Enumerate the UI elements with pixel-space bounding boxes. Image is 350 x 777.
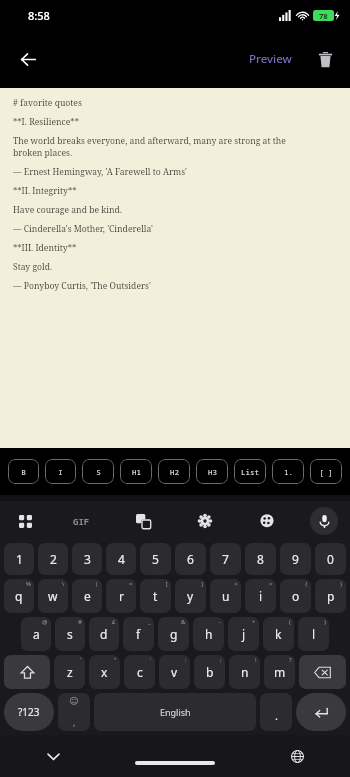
button[interactable]: Voice input bbox=[310, 507, 338, 535]
button[interactable]: I bbox=[45, 459, 76, 484]
button[interactable]: ' bbox=[54, 655, 85, 689]
button[interactable]: Backspace bbox=[299, 655, 346, 689]
staticText: ) bbox=[324, 618, 326, 626]
staticText: ( bbox=[289, 618, 291, 626]
button[interactable]: List bbox=[234, 459, 266, 484]
staticText: \ bbox=[62, 580, 65, 588]
staticText: p bbox=[327, 588, 335, 604]
staticText: l bbox=[312, 626, 316, 642]
staticText: w bbox=[48, 588, 58, 604]
button[interactable]: H3 bbox=[196, 459, 228, 484]
button[interactable]: ; bbox=[194, 655, 225, 689]
button[interactable]: # bbox=[55, 617, 85, 651]
staticText: " bbox=[114, 656, 117, 664]
button[interactable]: £ bbox=[89, 617, 119, 651]
button[interactable]: ?123 bbox=[4, 693, 54, 731]
button[interactable]: " bbox=[89, 655, 120, 689]
staticText: 7 bbox=[222, 551, 229, 567]
button[interactable]: 0 bbox=[315, 543, 346, 575]
button[interactable]: : bbox=[159, 655, 190, 689]
staticText: n bbox=[241, 664, 249, 680]
staticText: e bbox=[84, 588, 91, 604]
button[interactable]: ] bbox=[175, 579, 206, 613]
button[interactable]: & bbox=[158, 617, 189, 651]
button[interactable]: = bbox=[106, 579, 136, 613]
button[interactable]: [ bbox=[140, 579, 171, 613]
staticText: h bbox=[205, 626, 213, 642]
staticText: 9 bbox=[292, 551, 299, 567]
staticText: = bbox=[129, 580, 133, 588]
button[interactable]: 9 bbox=[280, 543, 311, 575]
button[interactable]: ) bbox=[298, 617, 329, 651]
button[interactable]: Theme bbox=[236, 501, 298, 541]
staticText: z bbox=[67, 664, 73, 680]
staticText: a bbox=[33, 626, 40, 642]
staticText: _ bbox=[148, 618, 151, 626]
staticText: t bbox=[153, 588, 158, 604]
button[interactable]: Shift bbox=[4, 655, 50, 689]
staticText: f bbox=[136, 626, 141, 642]
staticText: # favorite quotes bbox=[13, 97, 82, 109]
button[interactable]: 5 bbox=[140, 543, 171, 575]
button[interactable]: Settings bbox=[174, 501, 236, 541]
button[interactable]: Change language bbox=[282, 741, 312, 771]
button[interactable]: 3 bbox=[72, 543, 102, 575]
staticText: H2 bbox=[170, 467, 179, 477]
staticText: 0 bbox=[327, 551, 334, 567]
button[interactable]: Preview bbox=[243, 45, 298, 73]
button[interactable]: Apps bbox=[0, 501, 50, 541]
staticText: g bbox=[170, 626, 178, 642]
button[interactable]: @ bbox=[21, 617, 51, 651]
button[interactable]: { bbox=[280, 579, 311, 613]
button[interactable]: Translate bbox=[112, 501, 174, 541]
button[interactable]: ☺ bbox=[58, 693, 90, 731]
button[interactable]: Hide keyboard bbox=[38, 741, 68, 771]
staticText: # bbox=[78, 618, 82, 626]
button[interactable]: } bbox=[315, 579, 346, 613]
button[interactable]: . bbox=[260, 693, 292, 731]
staticText: - bbox=[219, 618, 221, 626]
staticText: ? bbox=[289, 656, 292, 664]
button[interactable]: # favorite quotes bbox=[13, 97, 338, 448]
staticText: j bbox=[242, 626, 246, 642]
staticText: @ bbox=[42, 618, 48, 626]
staticText: y bbox=[187, 588, 194, 604]
button[interactable]: < bbox=[210, 579, 241, 613]
button[interactable]: - bbox=[193, 617, 224, 651]
button[interactable]: B bbox=[8, 459, 39, 484]
button[interactable]: 1 bbox=[4, 543, 34, 575]
button[interactable]: 4 bbox=[106, 543, 136, 575]
button[interactable]: \ bbox=[38, 579, 68, 613]
button[interactable]: 6 bbox=[175, 543, 206, 575]
button[interactable]: S bbox=[82, 459, 114, 484]
staticText: ☺ bbox=[69, 696, 79, 706]
staticText: — Ernest Hemingway, 'A Farewell to Arms' bbox=[13, 166, 187, 178]
button[interactable]: > bbox=[245, 579, 276, 613]
button[interactable]: _ bbox=[123, 617, 154, 651]
button[interactable]: 7 bbox=[210, 543, 241, 575]
button[interactable]: 2 bbox=[38, 543, 68, 575]
button[interactable]: Delete bbox=[308, 42, 342, 76]
button[interactable]: GIF bbox=[50, 501, 112, 541]
button[interactable]: 8 bbox=[245, 543, 276, 575]
button[interactable]: H2 bbox=[158, 459, 190, 484]
button[interactable]: ( bbox=[263, 617, 294, 651]
button[interactable]: 1. bbox=[272, 459, 304, 484]
button[interactable]: ' bbox=[124, 655, 155, 689]
button[interactable]: [ ] bbox=[310, 459, 342, 484]
staticText: 3 bbox=[84, 551, 91, 567]
button[interactable]: | bbox=[72, 579, 102, 613]
button[interactable]: % bbox=[4, 579, 34, 613]
staticText: English bbox=[160, 706, 191, 718]
button[interactable]: H1 bbox=[120, 459, 152, 484]
button[interactable]: + bbox=[228, 617, 259, 651]
button[interactable]: ! bbox=[229, 655, 260, 689]
staticText: q bbox=[15, 588, 23, 604]
button[interactable]: ? bbox=[264, 655, 295, 689]
staticText: GIF bbox=[73, 515, 90, 527]
button[interactable]: Enter bbox=[296, 693, 346, 731]
staticText: ; bbox=[220, 656, 222, 664]
button[interactable]: English bbox=[94, 693, 256, 731]
staticText: 6 bbox=[187, 551, 194, 567]
button[interactable]: Back bbox=[6, 37, 50, 81]
